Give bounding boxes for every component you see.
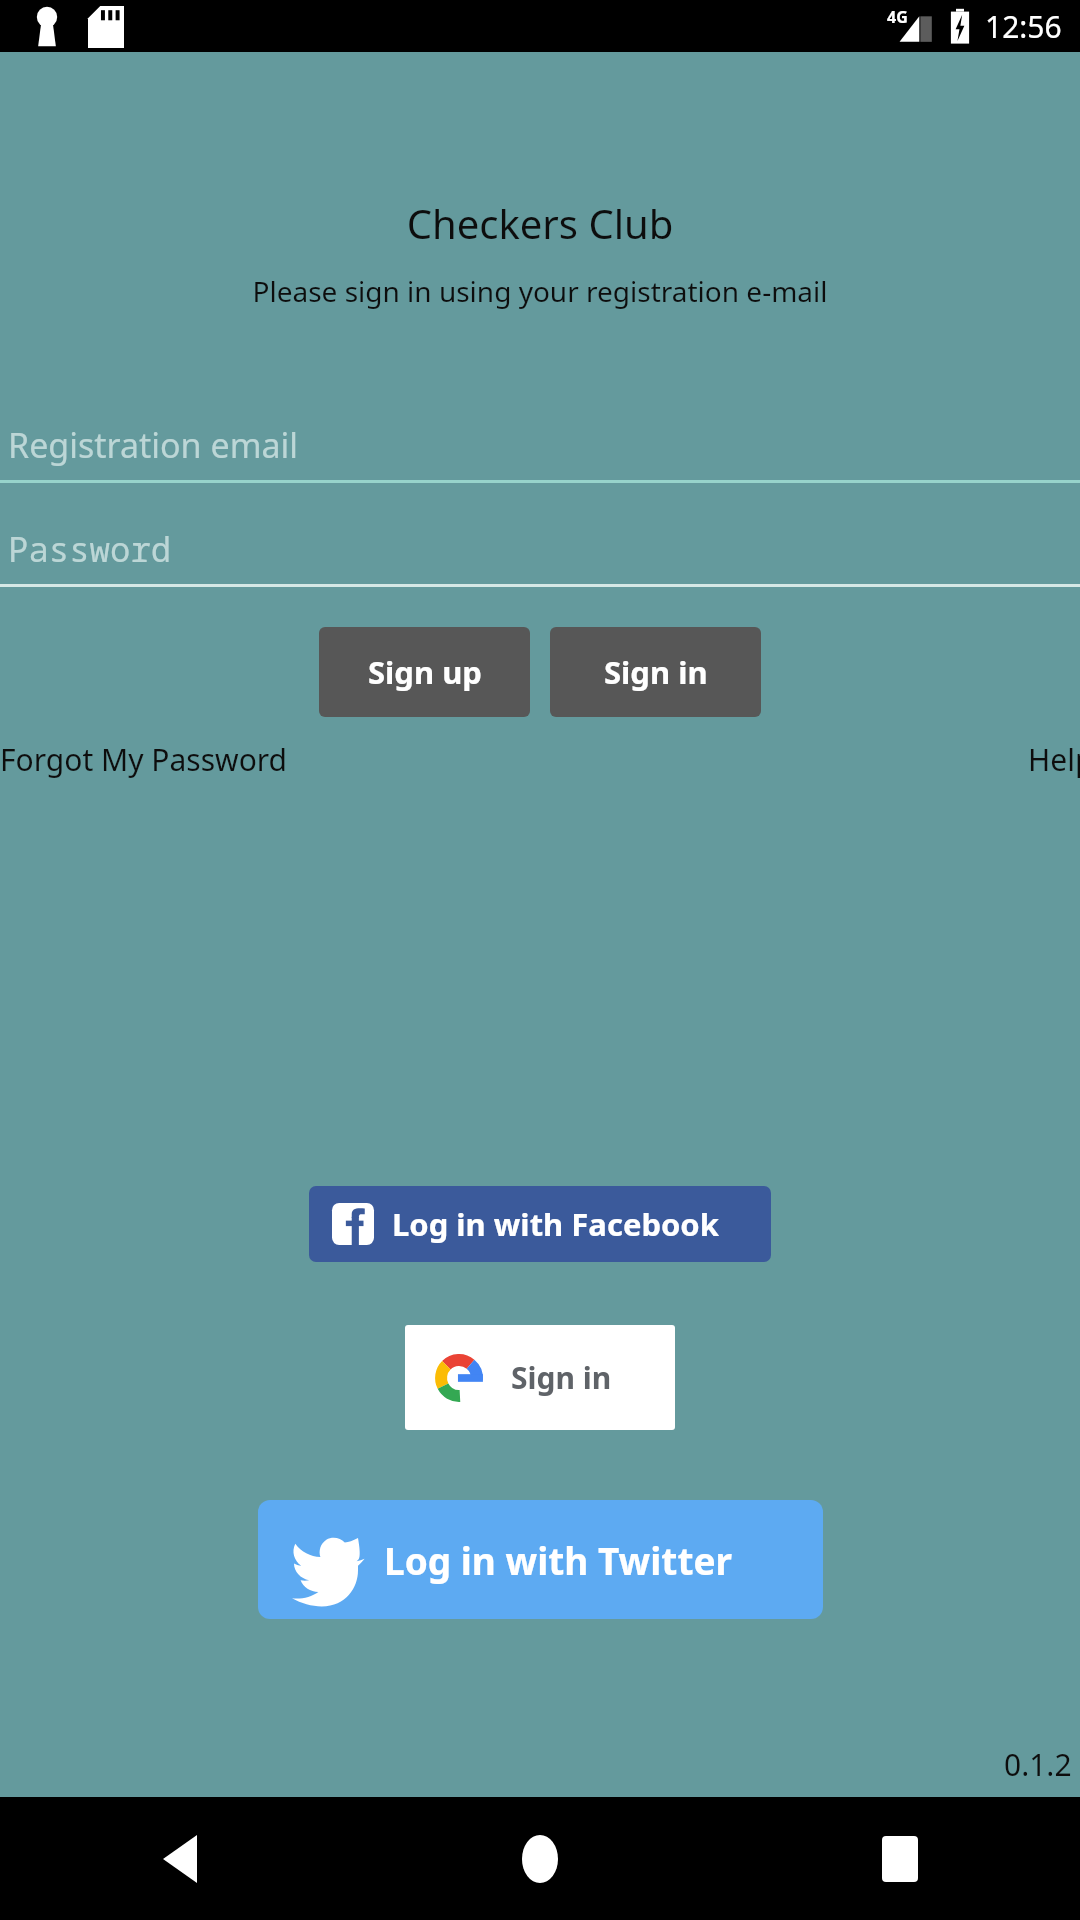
staticText: Checkers Club — [0, 196, 1080, 250]
staticText: 12:56 — [985, 6, 1062, 47]
button[interactable]: Password — [0, 526, 1080, 587]
button[interactable]: Back — [0, 1797, 360, 1920]
staticText: Sign in — [511, 1357, 612, 1398]
staticText: Forgot My Password — [0, 739, 288, 780]
staticText: Sign up — [368, 651, 482, 693]
staticText: 0.1.2 — [1004, 1744, 1072, 1785]
button[interactable]: Log in with Twitter — [258, 1500, 823, 1619]
button[interactable]: Log in with Facebook — [309, 1186, 771, 1262]
staticText: Help — [1028, 739, 1080, 780]
button[interactable]: Help — [1028, 731, 1080, 788]
button[interactable]: Sign in — [550, 627, 761, 717]
staticText: 4G — [887, 6, 908, 28]
button[interactable]: Forgot My Password — [0, 731, 288, 788]
staticText: Registration email — [8, 422, 299, 468]
staticText: Please sign in using your registration e… — [0, 272, 1080, 310]
staticText: Password — [8, 526, 172, 572]
staticText: Log in with Facebook — [392, 1203, 719, 1245]
button[interactable]: Registration email — [0, 422, 1080, 483]
button[interactable]: Home — [360, 1797, 720, 1920]
button[interactable]: Recent apps — [720, 1797, 1080, 1920]
button[interactable]: Sign up — [319, 627, 530, 717]
button[interactable]: Sign in — [405, 1325, 675, 1430]
staticText: Log in with Twitter — [384, 1535, 733, 1585]
staticText: Sign in — [604, 651, 708, 693]
